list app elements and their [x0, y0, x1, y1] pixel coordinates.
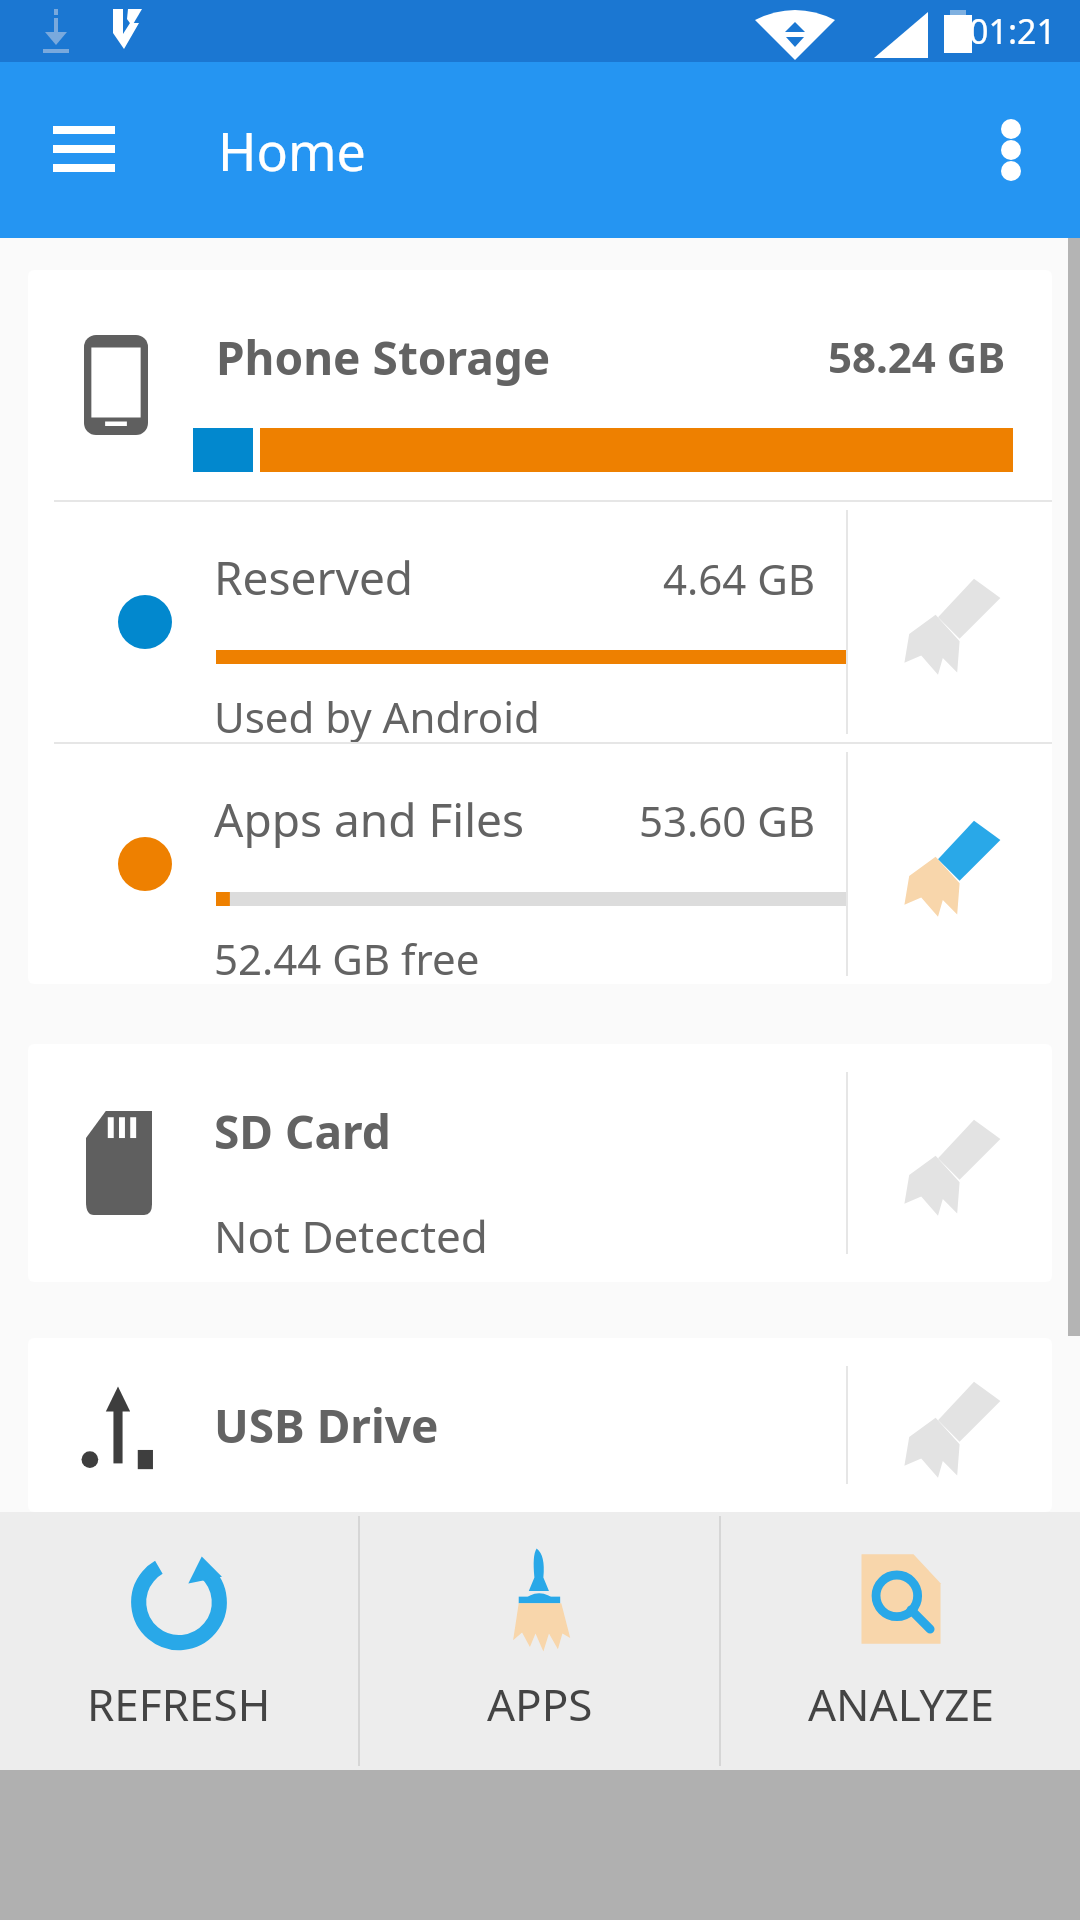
button[interactable]: Clean [848, 1338, 1052, 1512]
other: SD card [86, 1111, 152, 1215]
other: Clean [890, 804, 1010, 924]
button[interactable]: Reserved [28, 502, 846, 742]
staticText: REFRESH [87, 1674, 271, 1734]
staticText: Apps and Files [214, 788, 525, 851]
other: Clean [890, 1103, 1010, 1223]
button[interactable]: APPS [360, 1512, 719, 1770]
button[interactable]: SD card [28, 1044, 846, 1282]
button[interactable]: Clean [848, 502, 1052, 742]
staticText: 58.24 GB [828, 328, 1006, 385]
staticText: Not Detected [214, 1206, 488, 1266]
button[interactable]: Apps and Files [28, 744, 846, 984]
staticText: Phone Storage [216, 326, 551, 389]
staticText: USB Drive [214, 1394, 439, 1457]
button[interactable]: Clean [848, 744, 1052, 984]
other: Clean [890, 562, 1010, 682]
other: Clean [890, 1365, 1010, 1485]
button[interactable]: Clean [848, 1044, 1052, 1282]
staticText: Home [218, 115, 366, 186]
button[interactable]: ANALYZE [721, 1512, 1080, 1770]
other: Phone storage [84, 335, 148, 435]
staticText: Used by Android [214, 688, 540, 742]
staticText: SD Card [214, 1100, 391, 1163]
button[interactable]: More options [956, 95, 1066, 205]
staticText: 4.64 GB [663, 550, 816, 607]
other: USB drive [80, 1377, 156, 1473]
staticText: Reserved [214, 546, 414, 609]
staticText: 52.44 GB free [214, 930, 480, 984]
button[interactable]: Open navigation drawer [22, 88, 146, 212]
staticText: ANALYZE [808, 1674, 994, 1734]
button[interactable]: REFRESH [0, 1512, 358, 1770]
staticText: 01:21 [969, 8, 1056, 54]
button[interactable]: USB drive [28, 1338, 846, 1512]
button[interactable]: Phone storage [28, 270, 1052, 500]
staticText: APPS [487, 1674, 593, 1734]
staticText: 53.60 GB [639, 792, 816, 849]
